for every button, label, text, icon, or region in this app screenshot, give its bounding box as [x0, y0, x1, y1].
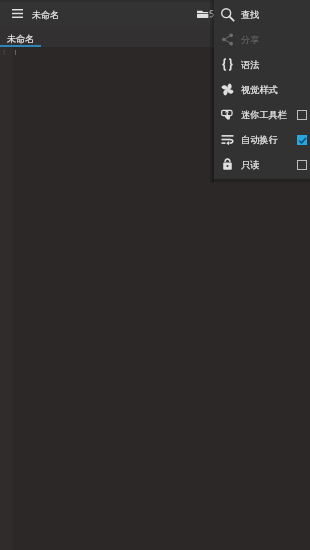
staticText: 1	[2, 48, 7, 58]
staticText: 自动换行	[241, 134, 278, 146]
staticText: 未命名	[7, 33, 34, 44]
staticText: 迷你工具栏	[241, 109, 287, 121]
staticText: 只读	[241, 159, 260, 171]
button[interactable]: 自动换行	[214, 127, 310, 152]
staticText: 视觉样式	[241, 84, 278, 96]
staticText: 语法	[241, 59, 260, 71]
button[interactable]: 语法	[214, 52, 310, 77]
button[interactable]: Recent files	[192, 3, 215, 24]
button[interactable]: 未命名	[0, 27, 41, 47]
button[interactable]: 视觉样式	[214, 77, 310, 102]
button[interactable]: 只读	[214, 152, 310, 177]
button[interactable]: 查找	[214, 2, 310, 27]
button[interactable]: 迷你工具栏	[214, 102, 310, 127]
button[interactable]: Navigation menu	[4, 0, 31, 27]
button[interactable]: 分享	[214, 27, 310, 52]
staticText: 查找	[241, 9, 260, 21]
staticText: 未命名	[32, 9, 59, 20]
staticText: 分享	[241, 34, 260, 46]
